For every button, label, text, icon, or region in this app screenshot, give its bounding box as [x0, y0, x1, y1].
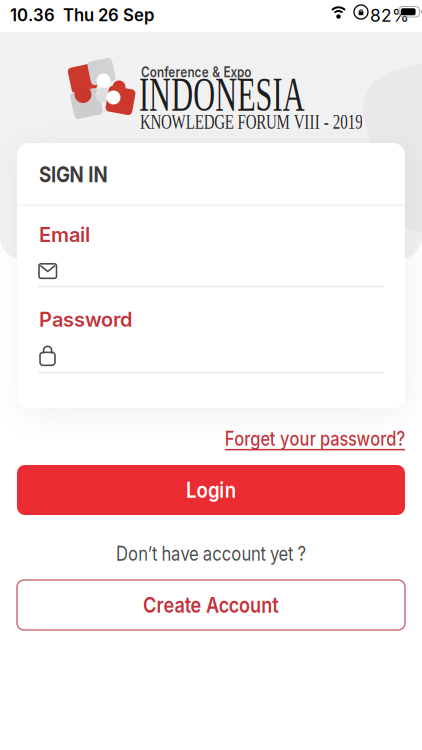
staticText: Email [39, 223, 90, 247]
staticText: Login [182, 477, 239, 503]
staticText: INDONESIA [139, 68, 402, 121]
button[interactable]: Create Account [17, 580, 405, 630]
staticText: KNOWLEDGE FORUM VIII - 2019 [140, 111, 422, 133]
staticText: Password [39, 307, 132, 331]
staticText: Create Account [131, 592, 291, 618]
button[interactable]: Login [17, 465, 405, 515]
staticText: Forget your password? [193, 427, 405, 450]
staticText: Conference & Expo [141, 63, 279, 81]
staticText: 10.36 [10, 5, 55, 25]
staticText: Don’t have account yet ? [100, 542, 321, 565]
button[interactable]: Forget your password? [193, 427, 405, 450]
staticText: Thu 26 Sep [63, 5, 154, 25]
staticText: SIGN IN [39, 161, 120, 188]
staticText: 82% [370, 5, 409, 26]
